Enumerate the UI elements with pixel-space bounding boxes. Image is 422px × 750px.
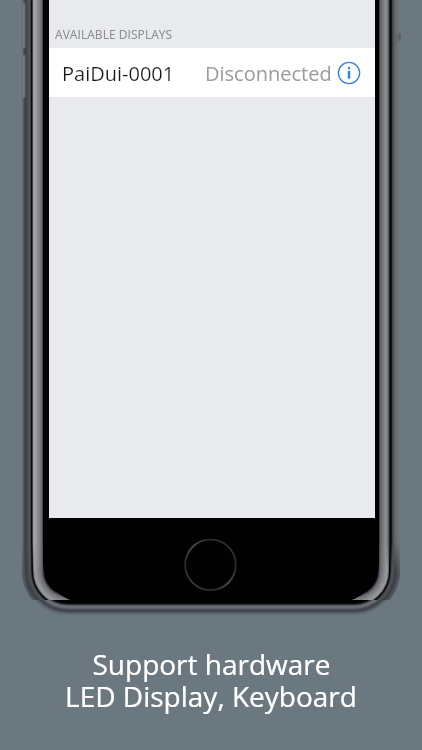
staticText: PaiDui-0001 [62,60,175,87]
staticText: AVAILABLE DISPLAYS [55,26,173,42]
staticText: Support hardware [92,645,331,683]
button[interactable]: More info [336,60,362,86]
button[interactable]: PaiDui-0001 [49,48,375,97]
staticText: Disconnected [205,60,332,87]
staticText: LED Display, Keyboard [65,677,357,715]
